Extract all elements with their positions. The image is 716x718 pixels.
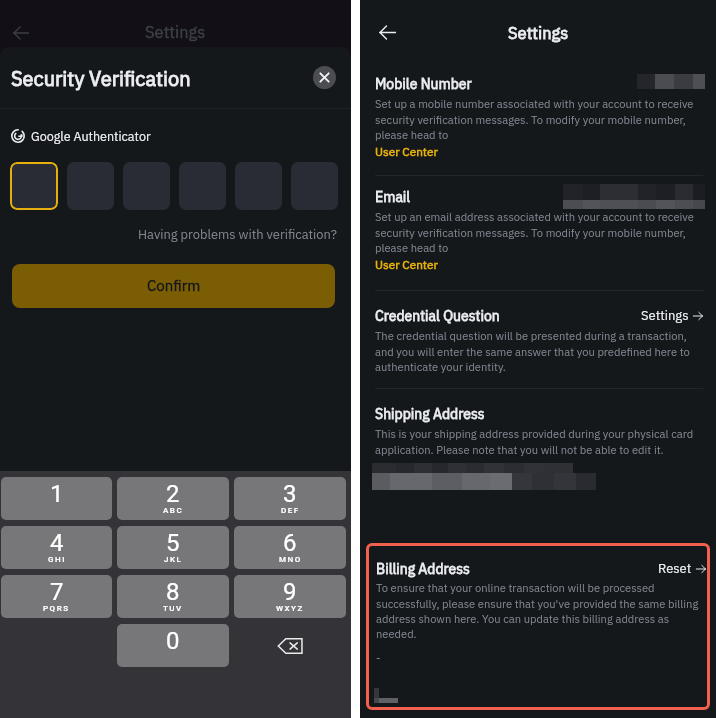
staticText: DEF [281,506,300,515]
button[interactable] [235,162,282,210]
button[interactable]: 8 [117,575,229,618]
staticText: Reset [658,560,692,577]
button[interactable]: Having problems with verification? [0,226,337,243]
staticText: 2 [166,480,180,508]
staticText: 0 [166,627,180,655]
button[interactable] [67,162,114,210]
button[interactable]: 1 [1,477,112,520]
staticText: 5 [166,529,180,557]
staticText: Settings [145,21,206,42]
button[interactable]: 6 [234,526,346,569]
button[interactable]: 7 [1,575,112,618]
staticText: This is your shipping address provided d… [375,427,694,457]
staticText: 3 [283,480,297,508]
staticText: Shipping Address [375,405,485,423]
button[interactable]: Back [373,18,401,46]
staticText: Settings [641,307,689,324]
button[interactable]: Reset [658,560,706,577]
staticText: MNO [279,555,302,564]
staticText: Set up an email address associated with … [375,210,694,255]
button[interactable] [123,162,170,210]
staticText: 7 [50,578,64,606]
button[interactable]: User Center [375,144,438,159]
button[interactable]: 5 [117,526,229,569]
button[interactable]: 2 [117,477,229,520]
staticText: 4 [50,529,64,557]
button[interactable] [179,162,226,210]
staticText: GHI [48,555,66,564]
staticText: 9 [283,578,297,606]
button[interactable]: User Center [375,257,438,272]
button[interactable] [291,162,338,210]
staticText: Google Authenticator [31,128,151,144]
button[interactable] [10,162,58,210]
button[interactable]: Delete [234,624,346,667]
staticText: JKL [164,555,183,564]
button[interactable]: Billing Address [366,543,710,710]
staticText: To ensure that your online transaction w… [376,581,699,641]
button[interactable]: Close [313,66,336,89]
staticText: Billing Address [376,560,470,578]
staticText: 6 [283,529,297,557]
staticText: ABC [163,506,184,515]
staticText: Credential Question [375,307,500,325]
button[interactable]: Settings [641,307,703,324]
staticText: The credential question will be presente… [375,329,690,374]
staticText: 1 [50,480,64,508]
staticText: Email [375,188,411,206]
button[interactable]: 3 [234,477,346,520]
staticText: - [376,651,381,665]
staticText: Mobile Number [375,75,472,93]
button[interactable]: 0 [117,624,229,667]
staticText: Set up a mobile number associated with y… [375,97,694,142]
staticText: Confirm [147,276,201,296]
button[interactable]: Back [7,19,35,47]
staticText: 8 [166,578,180,606]
staticText: TUV [163,604,183,613]
staticText: WXYZ [276,604,304,613]
button[interactable]: 4 [1,526,112,569]
staticText: PQRS [43,604,70,613]
button[interactable]: Confirm [12,264,335,308]
staticText: Settings [508,22,569,43]
button[interactable]: 9 [234,575,346,618]
staticText: Security Verification [11,65,191,91]
